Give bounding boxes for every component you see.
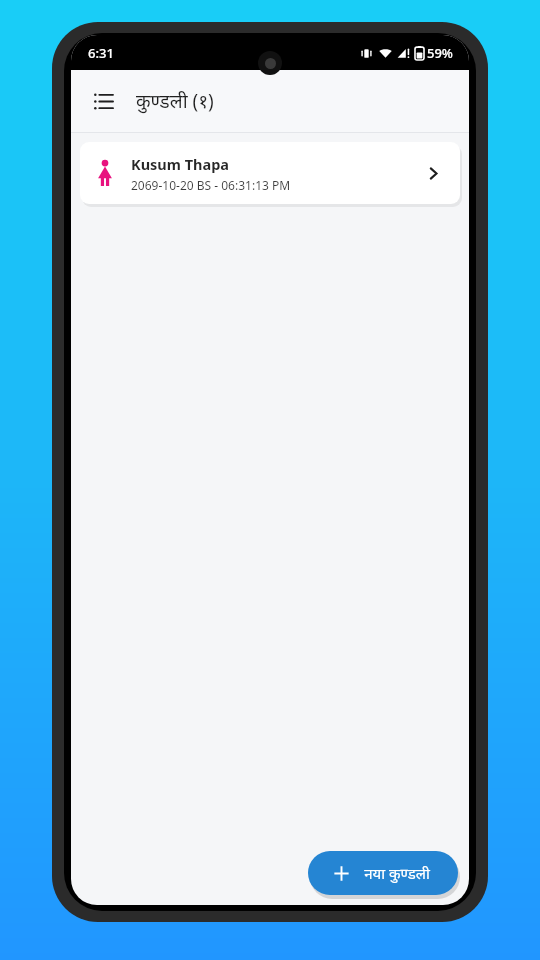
other: Open details [416,156,450,190]
button[interactable]: Menu [81,79,125,123]
button[interactable]: Kusum Thapa [80,142,460,204]
staticText: 6:31 [88,44,114,62]
staticText: कुण्डली (१) [136,88,214,114]
staticText: 2069-10-20 BS - 06:31:13 PM [131,177,291,193]
staticText: 59% [427,44,453,62]
staticText: Kusum Thapa [131,154,229,174]
button[interactable]: नया कुण्डली [308,851,458,895]
staticText: नया कुण्डली [364,863,430,883]
